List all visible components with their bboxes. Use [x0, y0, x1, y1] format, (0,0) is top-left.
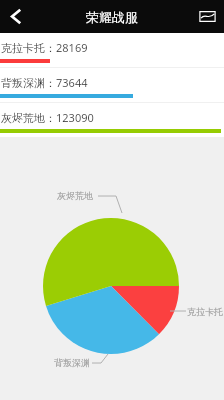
button[interactable]: 背叛深渊：73644: [0, 68, 224, 102]
staticText: 克拉卡托：28169: [1, 40, 88, 55]
staticText: 背叛深渊：73644: [1, 75, 88, 90]
staticText: 克拉卡托: [187, 306, 223, 317]
button[interactable]: Back: [0, 0, 33, 33]
staticText: 背叛深渊: [54, 357, 90, 368]
staticText: 灰烬荒地: [57, 190, 93, 201]
staticText: 灰烬荒地：123090: [1, 110, 94, 125]
button[interactable]: Banner: [191, 0, 224, 33]
button[interactable]: 灰烬荒地：123090: [0, 103, 224, 137]
staticText: 荣耀战服: [86, 9, 138, 25]
button[interactable]: 克拉卡托：28169: [0, 33, 224, 67]
